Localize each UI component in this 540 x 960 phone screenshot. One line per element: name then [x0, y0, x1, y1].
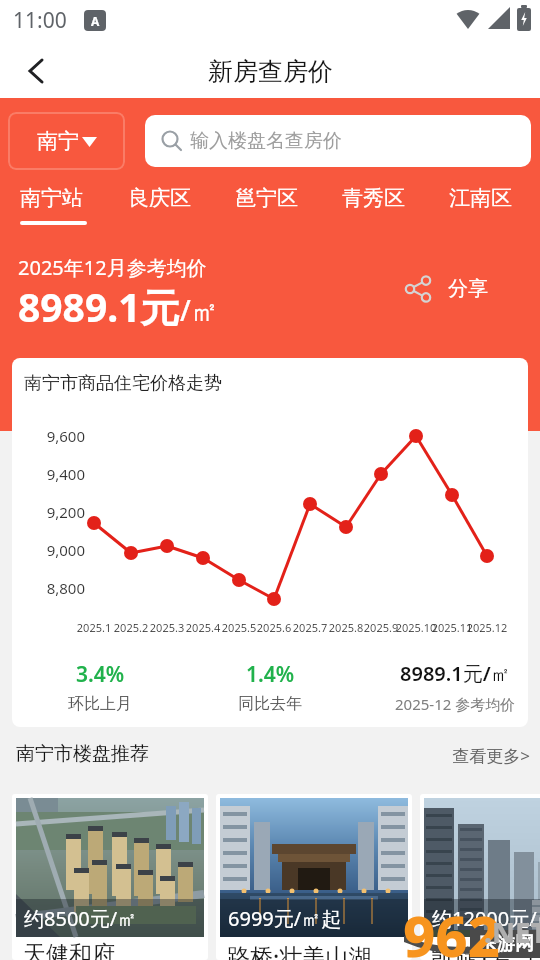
button[interactable]: 分享 [398, 268, 518, 310]
staticText: 环比上月 [68, 694, 132, 714]
staticText: 2025.3 [143, 620, 191, 635]
staticText: 2025.11 [428, 620, 476, 635]
button[interactable]: 南宁 [8, 112, 125, 170]
button[interactable]: 约8500元/㎡ [12, 794, 208, 960]
staticText: 9,400 [20, 464, 85, 484]
button[interactable]: 青秀区 [336, 182, 418, 228]
staticText: 同比去年 [238, 694, 302, 714]
staticText: 南宁站 [20, 185, 83, 211]
button[interactable]: 查看更多> [420, 744, 530, 774]
staticText: 邕宁区 [235, 185, 298, 211]
staticText: 2025.2 [107, 620, 155, 635]
staticText: 8989.1元 [18, 280, 180, 333]
staticText: 6999元/㎡起 [228, 905, 342, 932]
staticText: 2025.10 [392, 620, 440, 635]
button[interactable]: 输入楼盘名查房价 [145, 115, 531, 167]
button[interactable] [14, 50, 62, 90]
staticText: 天健和府 [23, 940, 115, 960]
staticText: 良庆区 [128, 185, 191, 211]
staticText: 约12000元/㎡ [432, 905, 540, 932]
button[interactable]: 江南区 [443, 182, 525, 228]
staticText: 2025-12 参考均价 [395, 694, 516, 714]
button[interactable]: 良庆区 [122, 182, 204, 228]
staticText: .NET [484, 913, 540, 951]
staticText: 1.4% [246, 660, 295, 689]
staticText: 新房查房价 [208, 56, 333, 87]
staticText: 查看更多> [420, 744, 530, 767]
staticText: 9,000 [20, 540, 85, 560]
staticText: 2025.6 [250, 620, 298, 635]
staticText: 南宁市楼盘推荐 [16, 742, 149, 766]
staticText: 乐游网 [477, 932, 534, 956]
staticText: 南宁 [37, 128, 79, 154]
staticText: 962 [403, 897, 501, 960]
staticText: 青秀区 [342, 185, 405, 211]
staticText: 2025.8 [322, 620, 370, 635]
staticText: 2025.1 [70, 620, 118, 635]
staticText: 2025.4 [179, 620, 227, 635]
staticText: 2025年12月参考均价 [18, 254, 207, 281]
staticText: 3.4% [76, 660, 125, 689]
button[interactable]: 6999元/㎡起 [216, 794, 412, 960]
staticText: 9,200 [20, 502, 85, 522]
button[interactable]: 南宁站 [14, 182, 96, 228]
staticText: 11:00 [13, 6, 67, 35]
staticText: 2025.12 [463, 620, 511, 635]
staticText: 2025.9 [357, 620, 405, 635]
staticText: /㎡ [180, 291, 219, 329]
button[interactable]: 约12000元/㎡ [420, 794, 540, 960]
staticText: 路桥·壮美山湖 [227, 940, 372, 960]
staticText: 2025.5 [215, 620, 263, 635]
button[interactable]: 邕宁区 [229, 182, 311, 228]
staticText: 南宁市商品住宅价格走势 [24, 372, 222, 395]
staticText: 输入楼盘名查房价 [190, 129, 342, 153]
staticText: 8989.1元/㎡ [400, 660, 511, 687]
staticText: 8,800 [20, 578, 85, 598]
staticText: 约8500元/㎡ [24, 905, 138, 932]
staticText: 2025.7 [286, 620, 334, 635]
staticText: A [91, 13, 100, 29]
staticText: 分享 [448, 276, 488, 301]
staticText: 9,600 [20, 426, 85, 446]
staticText: 凯旋1号·上城 [431, 940, 540, 960]
staticText: 江南区 [449, 185, 512, 211]
